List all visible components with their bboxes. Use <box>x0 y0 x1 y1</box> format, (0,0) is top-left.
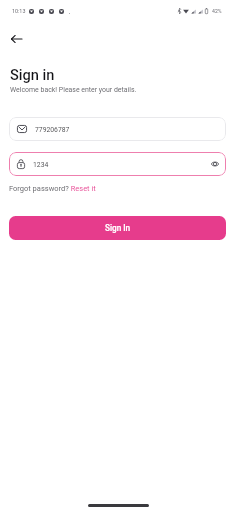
button[interactable]: Forgot password? Reset it <box>9 184 96 193</box>
button[interactable]: 779206787 <box>9 117 226 141</box>
staticText: 779206787 <box>35 126 70 134</box>
button[interactable]: Sign In <box>9 216 226 240</box>
button[interactable]: Show password <box>206 157 219 171</box>
button[interactable]: 1234 <box>9 152 226 176</box>
staticText: 42% <box>212 8 222 14</box>
button[interactable]: Back <box>4 27 28 51</box>
staticText: Sign In <box>105 223 131 233</box>
staticText: 1234 <box>33 161 49 169</box>
staticText: 10:13 <box>12 8 26 14</box>
staticText: Sign in <box>10 66 55 83</box>
staticText: Welcome back! Please enter your details. <box>10 86 137 94</box>
